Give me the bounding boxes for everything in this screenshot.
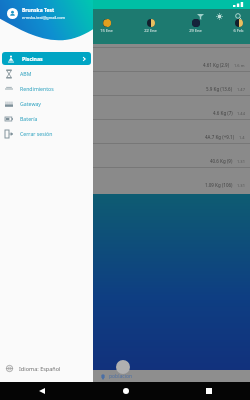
button[interactable]: Cerrar sesión: [0, 127, 93, 140]
staticText: 4.6 Kg (7): [213, 110, 233, 116]
button[interactable]: Settings: [213, 10, 225, 22]
staticText: 4.61 Kg (2.9): [203, 62, 230, 68]
button[interactable]: 4A.7 Kg (+9.1): [0, 119, 250, 143]
staticText: Batería: [20, 115, 38, 122]
staticText: 1.31: [237, 183, 245, 188]
staticText: 15 Ene: [100, 28, 113, 33]
staticText: Gateway: [20, 100, 42, 107]
staticText: Brunska Test: [22, 7, 55, 14]
button[interactable]: Idioma: Español: [0, 357, 93, 379]
staticText: Idioma: Español: [19, 365, 61, 372]
staticText: 40.6 Kg (9): [210, 158, 233, 164]
button[interactable]: 40.6 Kg (9): [0, 143, 250, 167]
staticText: Cerrar sesión: [20, 130, 53, 137]
button[interactable]: poblacion: [0, 370, 250, 382]
button[interactable]: Filter: [194, 10, 206, 22]
staticText: 1.31: [237, 159, 245, 164]
staticText: 1.4: [239, 135, 245, 140]
button[interactable]: Recents: [201, 383, 217, 399]
staticText: 1.6 m: [234, 63, 245, 68]
button[interactable]: 4.6 Kg (7): [0, 95, 250, 119]
button[interactable]: Gateway: [0, 97, 93, 110]
staticText: 1.44: [237, 111, 245, 116]
staticText: ABM: [20, 70, 32, 77]
staticText: 4A.7 Kg (+9.1): [205, 134, 235, 140]
staticText: 22 Ene: [144, 28, 157, 33]
button[interactable]: ABM: [0, 67, 93, 80]
button[interactable]: Search: [232, 10, 244, 22]
staticText: Piscinas: [22, 55, 43, 62]
button[interactable]: 1.09 Kg (106): [0, 167, 250, 191]
button[interactable]: Batería: [0, 112, 93, 125]
button[interactable]: Piscinas: [2, 52, 91, 65]
button[interactable]: Home: [118, 383, 134, 399]
staticText: poblacion: [109, 373, 133, 380]
staticText: 5.9 Kg (13.6): [206, 86, 233, 92]
staticText: 1.09 Kg (106): [205, 182, 233, 188]
staticText: Rendimientos: [20, 85, 54, 92]
button[interactable]: Back: [34, 383, 50, 399]
button[interactable]: Rendimientos: [0, 82, 93, 95]
button[interactable]: 5.9 Kg (13.6): [0, 71, 250, 95]
button[interactable]: Add: [116, 360, 130, 374]
staticText: ermska.test@gmail.com: [22, 15, 66, 20]
staticText: 1.47: [237, 87, 245, 92]
staticText: 29 Ene: [189, 28, 202, 33]
button[interactable]: 4.61 Kg (2.9): [0, 47, 250, 71]
staticText: 6 Feb: [233, 28, 244, 33]
